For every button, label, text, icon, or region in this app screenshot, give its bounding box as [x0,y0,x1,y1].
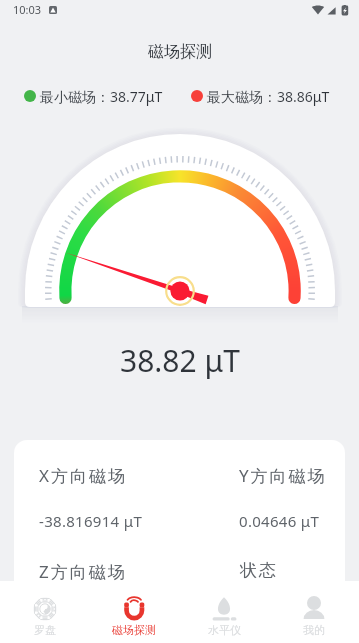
button[interactable]: 罗盘 [0,581,89,643]
staticText: 最小磁场：38.77μT [40,87,163,106]
staticText: 磁场探测 [112,623,156,637]
staticText: 状态 [239,560,277,581]
staticText: 0.04646 μT [239,511,320,531]
staticText: 38.82 μT [120,340,240,381]
staticText: Z方向磁场 [39,560,239,583]
button[interactable]: 磁场探测 [89,581,179,643]
staticText: Y方向磁场 [239,464,327,487]
staticText: -38.816914 μT [39,511,239,531]
button[interactable]: 水平仪 [179,581,269,643]
staticText: X方向磁场 [39,464,239,487]
staticText: 我的 [303,623,325,637]
staticText: 磁场探测 [148,42,212,62]
staticText: 10:03 [13,2,42,17]
button[interactable]: 我的 [269,581,359,643]
staticText: 最大磁场：38.86μT [207,87,330,106]
staticText: 罗盘 [34,623,56,637]
staticText: 水平仪 [208,623,241,637]
